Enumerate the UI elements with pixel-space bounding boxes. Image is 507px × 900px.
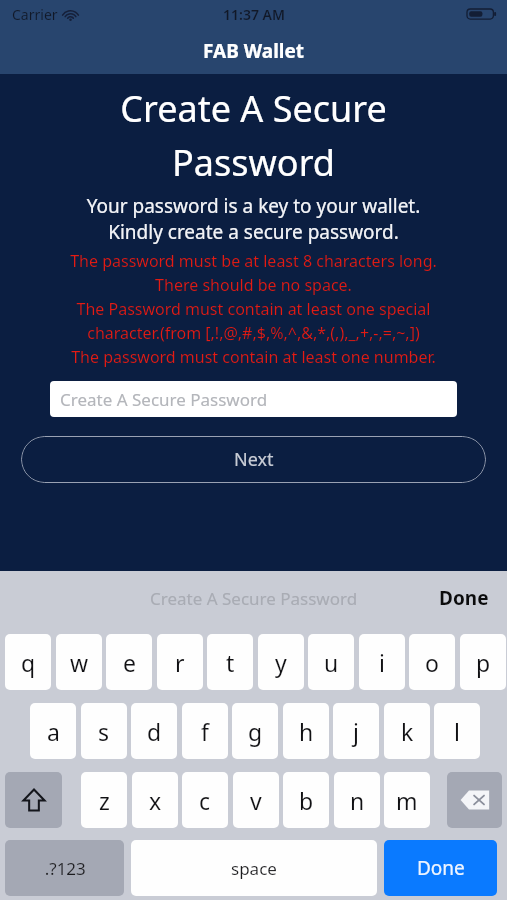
button[interactable]: e bbox=[106, 634, 152, 690]
staticText: The password must be at least 8 characte… bbox=[6, 250, 501, 368]
button[interactable]: x bbox=[132, 772, 178, 828]
staticText: Create A Secure Password bbox=[60, 388, 268, 411]
button[interactable]: c bbox=[182, 772, 228, 828]
button[interactable]: Next bbox=[21, 436, 486, 483]
staticText: .?123 bbox=[43, 857, 86, 880]
button[interactable]: Create A Secure Password bbox=[50, 381, 457, 417]
button[interactable]: m bbox=[384, 772, 430, 828]
button[interactable]: k bbox=[384, 703, 430, 759]
staticText: Your password is a key to your wallet. K… bbox=[0, 193, 507, 244]
button[interactable]: j bbox=[333, 703, 379, 759]
staticText: b bbox=[299, 785, 314, 816]
staticText: z bbox=[99, 785, 110, 816]
staticText: g bbox=[248, 716, 263, 747]
staticText: Done bbox=[439, 585, 489, 611]
staticText: Carrier bbox=[12, 5, 58, 24]
button[interactable]: v bbox=[233, 772, 279, 828]
button[interactable]: q bbox=[5, 634, 51, 690]
button[interactable]: s bbox=[81, 703, 127, 759]
button[interactable]: h bbox=[283, 703, 329, 759]
button[interactable]: Done bbox=[384, 840, 497, 896]
button[interactable]: g bbox=[232, 703, 278, 759]
staticText: i bbox=[379, 647, 385, 678]
staticText: q bbox=[21, 647, 36, 678]
button[interactable]: y bbox=[258, 634, 304, 690]
staticText: u bbox=[324, 647, 339, 678]
staticText: FAB Wallet bbox=[203, 38, 305, 64]
button[interactable]: p bbox=[460, 634, 506, 690]
staticText: e bbox=[123, 647, 136, 678]
button[interactable]: Done bbox=[421, 579, 507, 617]
staticText: Next bbox=[234, 447, 274, 472]
staticText: Done bbox=[417, 855, 465, 881]
staticText: v bbox=[250, 785, 262, 816]
button[interactable]: r bbox=[157, 634, 203, 690]
staticText: m bbox=[396, 785, 418, 816]
staticText: h bbox=[299, 716, 314, 747]
staticText: f bbox=[201, 716, 209, 747]
staticText: t bbox=[226, 647, 235, 678]
staticText: r bbox=[175, 647, 185, 678]
button[interactable]: z bbox=[81, 772, 127, 828]
staticText: Create A Secure Password bbox=[150, 587, 358, 610]
staticText: Create A Secure Password bbox=[0, 84, 507, 186]
button[interactable]: b bbox=[283, 772, 329, 828]
button[interactable]: i bbox=[359, 634, 405, 690]
staticText: d bbox=[147, 716, 162, 747]
staticText: j bbox=[353, 716, 359, 747]
staticText: k bbox=[401, 716, 414, 747]
button[interactable]: d bbox=[131, 703, 177, 759]
button[interactable]: t bbox=[207, 634, 253, 690]
button[interactable]: n bbox=[334, 772, 380, 828]
button[interactable]: space bbox=[131, 840, 377, 896]
button[interactable]: w bbox=[56, 634, 102, 690]
staticText: c bbox=[199, 785, 211, 816]
staticText: n bbox=[350, 785, 365, 816]
button[interactable]: f bbox=[182, 703, 228, 759]
staticText: y bbox=[275, 647, 287, 678]
staticText: space bbox=[231, 857, 277, 880]
staticText: a bbox=[47, 716, 60, 747]
staticText: o bbox=[425, 647, 439, 678]
button[interactable]: Backspace bbox=[447, 772, 502, 828]
button[interactable]: Shift bbox=[5, 772, 62, 828]
staticText: l bbox=[454, 716, 460, 747]
button[interactable]: u bbox=[308, 634, 354, 690]
staticText: x bbox=[149, 785, 162, 816]
staticText: s bbox=[98, 716, 110, 747]
button[interactable]: .?123 bbox=[5, 840, 124, 896]
button[interactable]: a bbox=[30, 703, 76, 759]
button[interactable]: l bbox=[434, 703, 480, 759]
button[interactable]: o bbox=[409, 634, 455, 690]
staticText: w bbox=[70, 647, 89, 678]
staticText: p bbox=[476, 647, 491, 678]
staticText: 11:37 AM bbox=[223, 5, 285, 24]
